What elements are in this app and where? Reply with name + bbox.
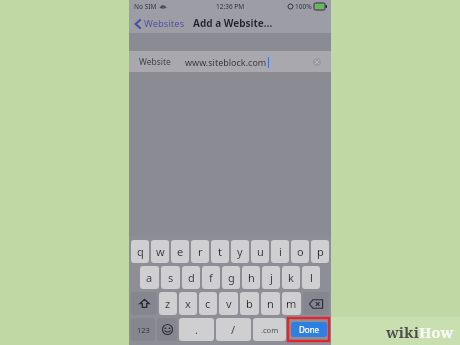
staticText: n xyxy=(267,296,274,311)
button[interactable]: q xyxy=(131,240,149,263)
button[interactable]: s xyxy=(161,266,180,289)
button[interactable]: c xyxy=(199,292,217,315)
staticText: www.siteblock.com xyxy=(185,56,267,68)
staticText: . xyxy=(195,322,198,337)
staticText: m xyxy=(286,296,297,311)
staticText: l xyxy=(310,270,313,285)
staticText: d xyxy=(188,270,195,285)
staticText: x xyxy=(185,296,191,311)
staticText: .com xyxy=(261,325,279,335)
button[interactable]: Delete xyxy=(303,292,329,315)
staticText: How xyxy=(419,322,454,342)
button[interactable]: y xyxy=(231,240,249,263)
staticText: p xyxy=(317,244,324,259)
staticText: k xyxy=(288,270,294,285)
staticText: 100% xyxy=(295,2,312,11)
staticText: h xyxy=(248,270,255,285)
staticText: b xyxy=(246,296,253,311)
button[interactable]: w xyxy=(151,240,169,263)
button[interactable]: x xyxy=(179,292,197,315)
button[interactable]: a xyxy=(140,266,159,289)
button[interactable]: 123 xyxy=(131,318,155,341)
staticText: v xyxy=(226,296,232,311)
staticText: q xyxy=(137,244,144,259)
button[interactable]: d xyxy=(182,266,200,289)
button[interactable]: z xyxy=(159,292,177,315)
staticText: z xyxy=(165,296,171,311)
staticText: i xyxy=(279,244,282,259)
button[interactable]: Emoji xyxy=(157,318,177,341)
button[interactable]: v xyxy=(219,292,238,315)
staticText: Website xyxy=(139,56,171,68)
staticText: s xyxy=(168,270,174,285)
button[interactable]: h xyxy=(242,266,260,289)
button[interactable]: r xyxy=(191,240,209,263)
staticText: a xyxy=(146,270,153,285)
staticText: 12:36 PM xyxy=(216,2,245,11)
staticText: y xyxy=(237,244,243,259)
staticText: Websites xyxy=(144,17,185,30)
button[interactable]: Websites xyxy=(133,15,187,32)
staticText: u xyxy=(257,244,264,259)
button[interactable]: p xyxy=(311,240,329,263)
staticText: wiki xyxy=(386,322,419,342)
staticText: Done xyxy=(299,324,320,335)
button[interactable]: i xyxy=(271,240,289,263)
button[interactable]: b xyxy=(240,292,259,315)
staticText: f xyxy=(209,270,213,285)
staticText: r xyxy=(198,244,203,259)
staticText: c xyxy=(205,296,211,311)
button[interactable]: f xyxy=(202,266,220,289)
staticText: No SIM xyxy=(134,2,157,11)
button[interactable]: j xyxy=(262,266,280,289)
button[interactable]: m xyxy=(282,292,301,315)
button[interactable]: o xyxy=(291,240,309,263)
button[interactable]: k xyxy=(282,266,300,289)
button[interactable]: .com xyxy=(253,318,286,341)
button[interactable]: e xyxy=(171,240,189,263)
button[interactable]: Shift xyxy=(131,292,157,315)
button[interactable]: . xyxy=(179,318,214,341)
button[interactable]: n xyxy=(261,292,280,315)
staticText: / xyxy=(231,322,236,337)
button[interactable]: / xyxy=(216,318,251,341)
button[interactable]: Clear text xyxy=(310,55,324,69)
button[interactable]: Done xyxy=(291,322,327,337)
staticText: Add a Website… xyxy=(193,16,273,30)
button[interactable]: u xyxy=(251,240,269,263)
staticText: o xyxy=(297,244,304,259)
staticText: e xyxy=(177,244,184,259)
button[interactable]: g xyxy=(222,266,240,289)
staticText: g xyxy=(228,270,235,285)
button[interactable]: t xyxy=(211,240,229,263)
button[interactable]: l xyxy=(302,266,320,289)
staticText: 123 xyxy=(137,325,150,335)
staticText: t xyxy=(218,244,222,259)
staticText: j xyxy=(270,270,273,285)
staticText: w xyxy=(156,244,165,259)
